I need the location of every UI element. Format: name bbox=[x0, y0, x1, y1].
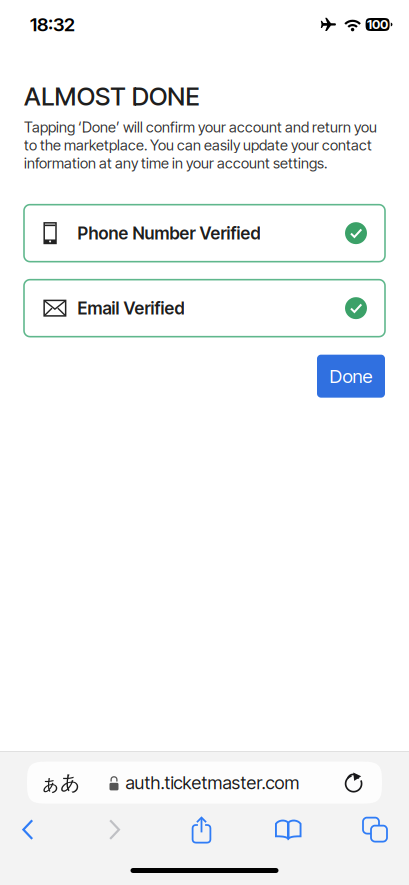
staticText: auth.ticketmaster.com bbox=[125, 772, 299, 793]
button[interactable]: Email Verified bbox=[24, 280, 385, 337]
staticText: 18:32 bbox=[30, 13, 75, 36]
staticText: ALMOST DONE bbox=[24, 81, 199, 112]
button[interactable]: Done bbox=[317, 355, 385, 398]
staticText: Tapping ‘Done’ will confirm your account… bbox=[24, 118, 377, 136]
staticText: ぁあ bbox=[40, 770, 80, 795]
staticText: information at any time in your account … bbox=[24, 154, 327, 172]
button[interactable]: Phone Number Verified bbox=[24, 205, 385, 262]
staticText: Phone Number Verified bbox=[77, 223, 260, 244]
staticText: to the marketplace. You can easily updat… bbox=[24, 136, 372, 154]
button[interactable]: Forward bbox=[87, 814, 143, 846]
button[interactable]: Bookmarks bbox=[260, 814, 316, 846]
staticText: Email Verified bbox=[77, 298, 184, 319]
button[interactable]: ぁあ bbox=[27, 762, 382, 804]
button[interactable]: Share bbox=[173, 814, 229, 846]
staticText: 100 bbox=[367, 17, 388, 32]
staticText: Done bbox=[329, 365, 372, 387]
button[interactable]: Back bbox=[0, 814, 56, 846]
button[interactable]: Tabs bbox=[347, 814, 403, 846]
